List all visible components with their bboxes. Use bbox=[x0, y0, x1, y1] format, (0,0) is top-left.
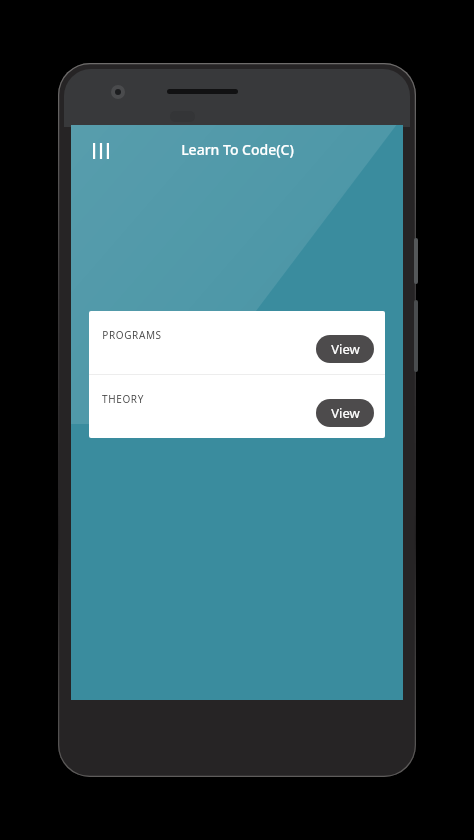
staticText: View bbox=[331, 340, 360, 358]
button[interactable]: Open navigation menu bbox=[81, 131, 121, 171]
staticText: THEORY bbox=[102, 392, 144, 406]
button[interactable]: View bbox=[316, 399, 374, 427]
button[interactable]: PROGRAMS bbox=[89, 311, 385, 374]
staticText: View bbox=[331, 404, 360, 422]
staticText: PROGRAMS bbox=[102, 328, 162, 342]
staticText: Learn To Code(C) bbox=[181, 140, 294, 159]
button[interactable]: View bbox=[316, 335, 374, 363]
button[interactable]: THEORY bbox=[89, 375, 385, 438]
